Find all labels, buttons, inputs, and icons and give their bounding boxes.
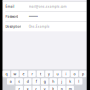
- button[interactable]: e: [20, 71, 27, 77]
- button[interactable]: Description: [3, 22, 87, 32]
- staticText: k: [69, 79, 71, 84]
- staticText: h: [52, 79, 54, 84]
- button[interactable]: n: [58, 86, 65, 90]
- button[interactable]: f: [32, 78, 40, 85]
- staticText: Description: [5, 25, 21, 29]
- button[interactable]: o: [71, 71, 78, 77]
- button[interactable]: l: [75, 78, 82, 85]
- staticText: z: [18, 87, 20, 90]
- staticText: n: [61, 87, 63, 90]
- button[interactable]: Password: [3, 12, 87, 22]
- button[interactable]: h: [49, 78, 57, 85]
- button[interactable]: y: [45, 71, 53, 77]
- staticText: One-Example: [29, 25, 50, 29]
- staticText: v: [44, 87, 46, 90]
- button[interactable]: p: [79, 71, 87, 77]
- staticText: x: [27, 87, 29, 90]
- staticText: r: [31, 71, 32, 76]
- button[interactable]: u: [54, 71, 61, 77]
- staticText: s: [18, 79, 20, 84]
- staticText: d: [27, 79, 29, 84]
- button[interactable]: x: [24, 86, 31, 90]
- button[interactable]: r: [28, 71, 36, 77]
- button[interactable]: v: [41, 86, 48, 90]
- button[interactable]: b: [49, 86, 57, 90]
- staticText: b: [52, 87, 54, 90]
- staticText: Email: [5, 5, 14, 9]
- button[interactable]: i: [62, 71, 70, 77]
- button[interactable]: j: [58, 78, 65, 85]
- button[interactable]: w: [11, 71, 19, 77]
- staticText: u: [56, 71, 58, 76]
- staticText: p: [82, 71, 84, 76]
- staticText: c: [35, 87, 37, 90]
- button[interactable]: q: [3, 71, 10, 77]
- staticText: g: [44, 79, 46, 84]
- button[interactable]: Email: [3, 2, 87, 12]
- staticText: t: [40, 71, 41, 76]
- staticText: l: [78, 79, 79, 84]
- staticText: m: [69, 87, 72, 90]
- staticText: •••••••••: [29, 15, 38, 19]
- button[interactable]: d: [24, 78, 31, 85]
- staticText: o: [73, 71, 75, 76]
- button[interactable]: z: [15, 86, 23, 90]
- button[interactable]: t: [37, 71, 44, 77]
- staticText: j: [61, 79, 62, 84]
- staticText: w: [13, 71, 16, 76]
- staticText: Password: [5, 15, 18, 19]
- button[interactable]: k: [66, 78, 74, 85]
- button[interactable]: m: [66, 86, 74, 90]
- staticText: f: [36, 79, 37, 84]
- staticText: a: [10, 79, 12, 84]
- staticText: mail@one-example.com: [29, 5, 67, 9]
- button[interactable]: g: [41, 78, 48, 85]
- staticText: q: [5, 71, 7, 76]
- staticText: y: [48, 71, 50, 76]
- button[interactable]: c: [32, 86, 40, 90]
- button[interactable]: s: [15, 78, 23, 85]
- button[interactable]: a: [7, 78, 14, 85]
- staticText: e: [22, 71, 24, 76]
